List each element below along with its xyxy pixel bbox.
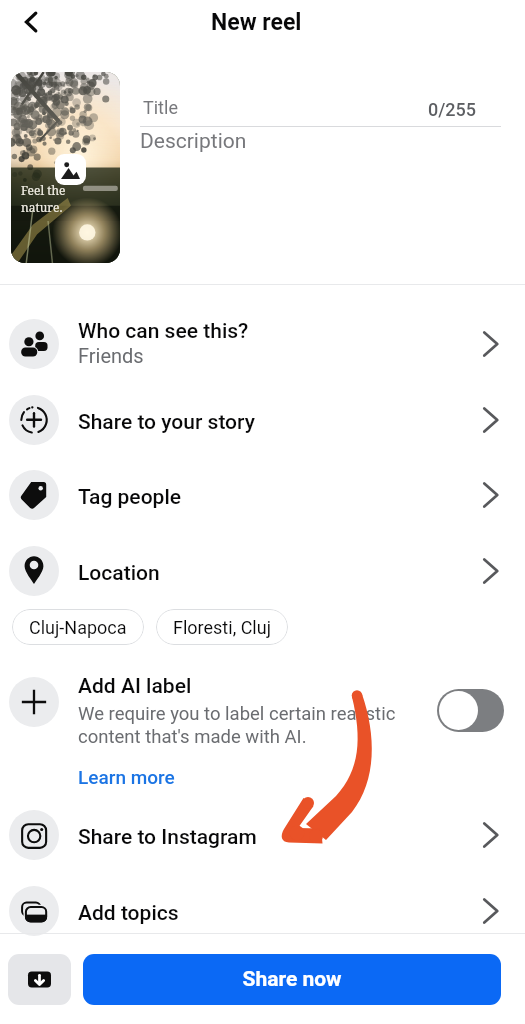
button[interactable]: Who can see this? — [0, 310, 525, 378]
staticText: Title — [143, 97, 178, 118]
button[interactable]: Add AI label toggle — [437, 689, 504, 732]
staticText: Tag people — [78, 485, 182, 510]
button[interactable]: Add topics — [0, 877, 525, 945]
staticText: Share to your story — [78, 410, 255, 435]
staticText: Add topics — [78, 901, 179, 926]
button[interactable]: Share now — [83, 954, 501, 1005]
staticText: Location — [78, 561, 160, 586]
button[interactable]: Cluj-Napoca — [12, 609, 144, 645]
staticText: Cluj-Napoca — [29, 617, 127, 638]
staticText: Who can see this? — [78, 319, 249, 344]
staticText: Feel the — [21, 182, 66, 198]
button[interactable]: Reel preview — [11, 72, 120, 263]
staticText: 0/255 — [428, 99, 477, 120]
staticText: Add AI label — [78, 674, 192, 699]
staticText: Friends — [78, 344, 144, 367]
staticText: We require you to label certain realisti… — [78, 703, 396, 748]
button[interactable]: Add AI label — [0, 668, 525, 788]
button[interactable]: Back — [10, 1, 52, 43]
button[interactable]: Share to your story — [0, 386, 525, 454]
button[interactable]: Share to Instagram — [0, 801, 525, 869]
staticText: Share to Instagram — [78, 825, 257, 850]
staticText: Share now — [242, 967, 342, 992]
button[interactable]: Floresti, Cluj — [156, 609, 288, 645]
button[interactable]: Learn more — [78, 766, 175, 788]
staticText: New reel — [211, 9, 302, 36]
button[interactable]: Location — [0, 537, 525, 605]
staticText: Description — [140, 129, 247, 154]
button[interactable]: Save draft — [8, 954, 71, 1005]
button[interactable]: Tag people — [0, 461, 525, 529]
staticText: Floresti, Cluj — [173, 617, 271, 638]
staticText: nature. — [21, 199, 63, 215]
